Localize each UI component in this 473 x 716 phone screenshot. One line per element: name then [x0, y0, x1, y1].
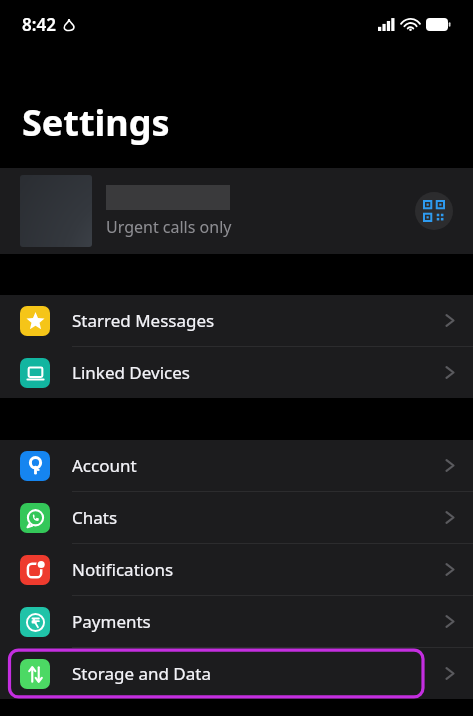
staticText: Starred Messages — [72, 309, 215, 332]
button[interactable]: Account — [0, 440, 473, 491]
staticText: Account — [72, 454, 137, 477]
other: Open — [445, 312, 455, 329]
other: Open — [445, 561, 455, 578]
staticText: Urgent calls only — [106, 216, 232, 238]
button[interactable]: Starred Messages — [0, 295, 473, 346]
other: Open — [445, 509, 455, 526]
other: Open — [445, 613, 455, 630]
button[interactable]: Linked Devices — [0, 347, 473, 398]
other: Open — [445, 364, 455, 381]
staticText: Linked Devices — [72, 361, 190, 384]
button[interactable]: Urgent calls only — [0, 168, 473, 254]
button[interactable]: Chats — [0, 492, 473, 543]
staticText: Chats — [72, 506, 118, 529]
other: Open — [445, 457, 455, 474]
button[interactable]: QR code — [415, 192, 453, 230]
other: Open — [445, 665, 455, 682]
staticText: 8:42 — [22, 13, 56, 36]
button[interactable]: Storage and Data — [0, 648, 473, 699]
staticText: Payments — [72, 610, 151, 633]
staticText: Settings — [22, 98, 170, 147]
button[interactable]: Payments — [0, 596, 473, 647]
staticText: Notifications — [72, 558, 174, 581]
button[interactable]: Notifications — [0, 544, 473, 595]
staticText: Storage and Data — [72, 662, 211, 685]
